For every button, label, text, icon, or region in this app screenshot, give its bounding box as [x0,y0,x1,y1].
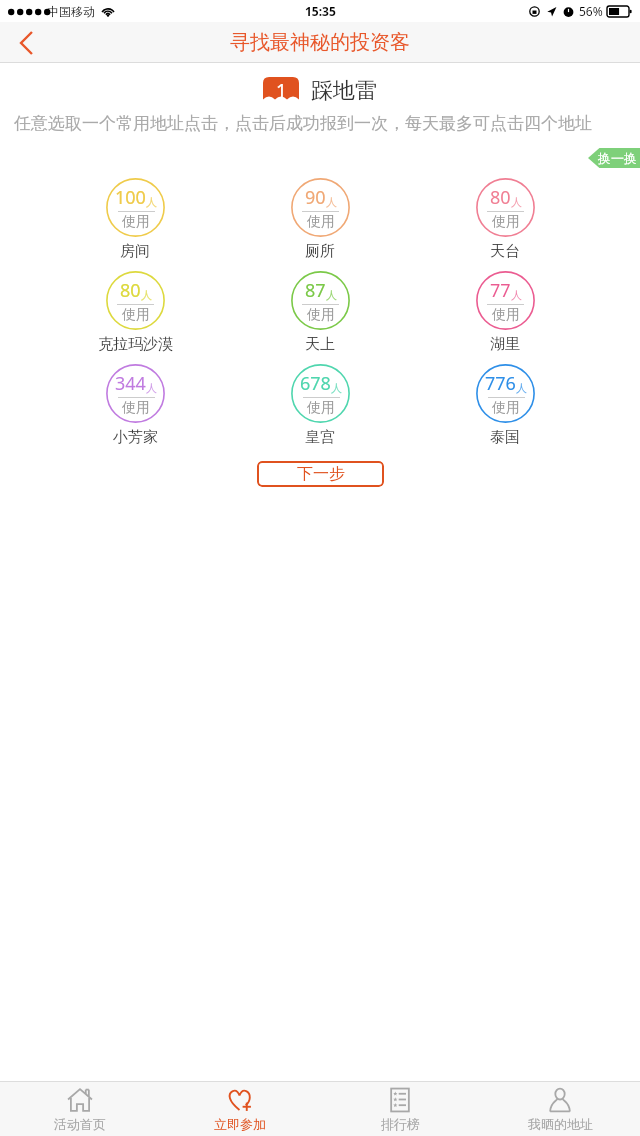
staticText: 80 [120,278,141,303]
staticText: 90 [305,185,326,210]
staticText: 人 [511,195,522,209]
button[interactable]: 90 [270,178,370,261]
staticText: 87 [305,278,326,303]
button[interactable]: 换一换 [588,148,640,168]
staticText: 使用 [122,399,150,417]
staticText: 使用 [492,213,520,231]
staticText: 厕所 [305,242,335,261]
staticText: 克拉玛沙漠 [98,335,173,354]
button[interactable]: Back [0,22,52,63]
staticText: 人 [146,195,157,209]
staticText: 皇宫 [305,428,335,447]
staticText: 人 [511,288,522,302]
staticText: 天台 [490,242,520,261]
staticText: 使用 [492,306,520,324]
staticText: 小芳家 [113,428,158,447]
button[interactable]: 678 [270,364,370,447]
staticText: 任意选取一个常用地址点击，点击后成功报到一次，每天最多可点击四个地址 [14,113,626,134]
staticText: 踩地雷 [311,77,377,105]
staticText: 776 [485,371,516,396]
staticText: 使用 [307,399,335,417]
staticText: 使用 [307,306,335,324]
staticText: 1 [276,78,287,104]
staticText: 56% [579,3,603,19]
staticText: 344 [115,371,146,396]
staticText: 人 [141,288,152,302]
staticText: 房间 [120,242,150,261]
button[interactable]: 80 [455,178,555,261]
button[interactable]: 87 [270,271,370,354]
staticText: 人 [516,381,527,395]
staticText: 使用 [492,399,520,417]
staticText: 立即参加 [214,1116,266,1132]
button[interactable]: 344 [85,364,185,447]
button[interactable]: 100 [85,178,185,261]
staticText: 我晒的地址 [528,1116,593,1132]
staticText: 中国移动 [47,4,95,19]
button[interactable]: 活动首页 [0,1082,160,1136]
staticText: 寻找最神秘的投资客 [230,30,410,55]
staticText: 使用 [122,213,150,231]
staticText: 活动首页 [54,1116,106,1132]
staticText: 77 [490,278,511,303]
staticText: 泰国 [490,428,520,447]
staticText: 100 [115,185,146,210]
button[interactable]: 80 [85,271,185,354]
staticText: 换一换 [598,150,637,166]
staticText: 使用 [307,213,335,231]
staticText: 下一步 [297,464,345,484]
button[interactable]: 立即参加 [160,1082,320,1136]
button[interactable]: 我晒的地址 [480,1082,640,1136]
staticText: 人 [326,195,337,209]
staticText: 人 [331,381,342,395]
button[interactable]: 排行榜 [320,1082,480,1136]
staticText: 排行榜 [381,1116,420,1132]
button[interactable]: 776 [455,364,555,447]
staticText: 人 [326,288,337,302]
staticText: 80 [490,185,511,210]
staticText: 天上 [305,335,335,354]
staticText: 使用 [122,306,150,324]
button[interactable]: 77 [455,271,555,354]
staticText: 15:35 [305,3,336,19]
staticText: 678 [300,371,331,396]
button[interactable]: 下一步 [257,461,384,487]
staticText: 湖里 [490,335,520,354]
staticText: 人 [146,381,157,395]
